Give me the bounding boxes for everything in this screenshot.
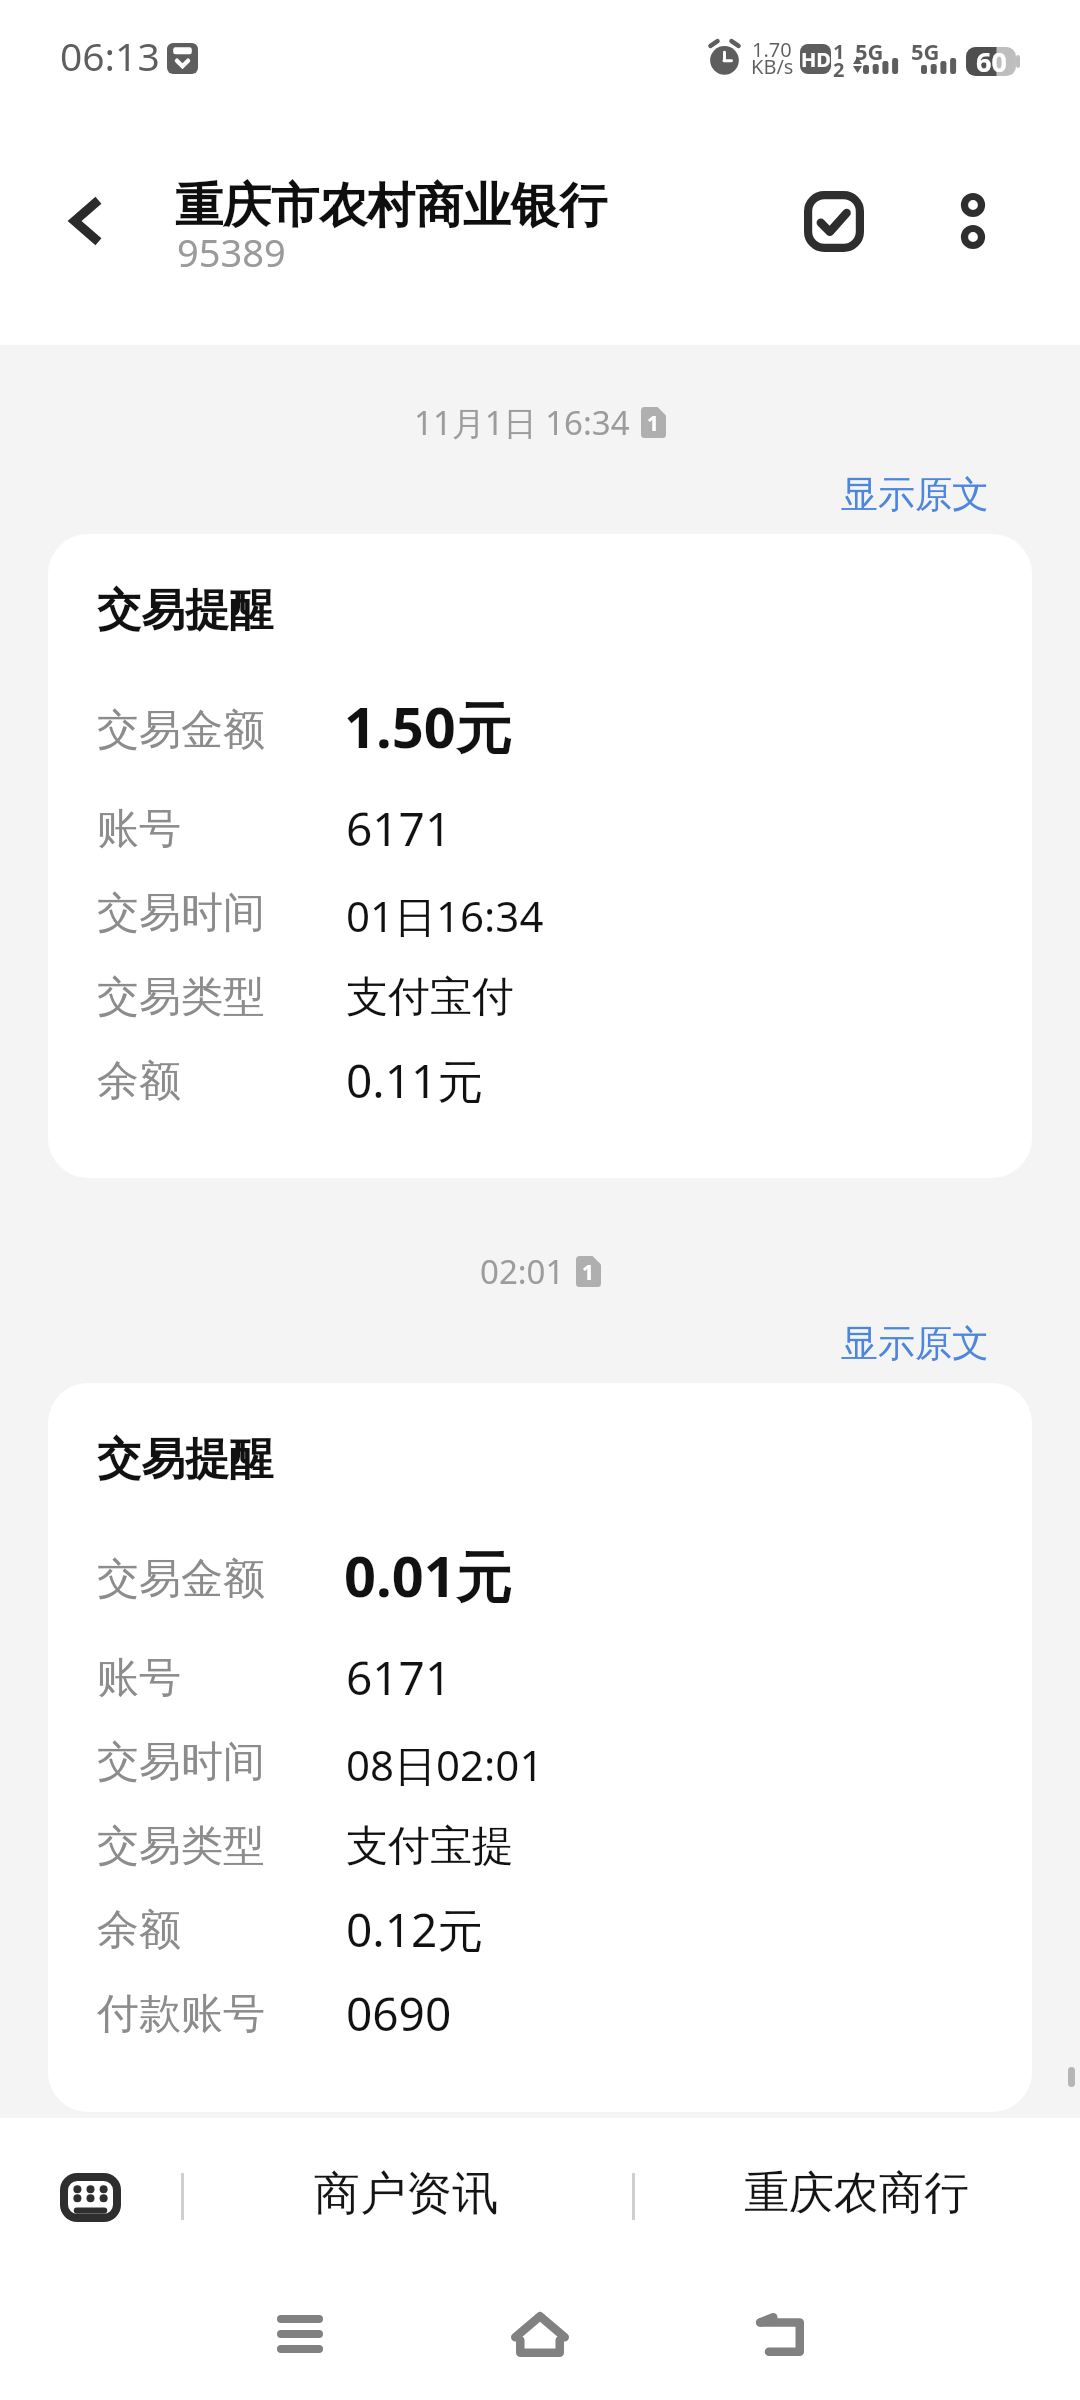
staticText: 交易时间 [97,1736,265,1789]
staticText: 5G [855,36,884,66]
staticText: 交易提醒 [97,1432,273,1487]
staticText: 交易金额 [97,1553,265,1606]
staticText: 重庆农商行 [744,2165,969,2222]
button[interactable]: 显示原文 [827,463,1003,526]
button[interactable]: 重庆农商行 [650,2118,1063,2283]
button[interactable]: 交易提醒 [48,1383,1032,2112]
staticText: 0.11元 [346,1049,484,1112]
staticText: 账号 [97,803,181,856]
staticText: 交易金额 [97,704,265,757]
button[interactable]: More options [929,177,1017,265]
staticText: 交易时间 [97,887,265,940]
staticText: 60 [976,43,1007,80]
staticText: 支付宝付 [346,971,514,1024]
staticText: 6171 [346,1646,452,1709]
staticText: 2 [833,56,845,83]
staticText: 1 [582,1258,595,1287]
staticText: 商户资讯 [314,2165,498,2223]
staticText: 11月1日 16:34 [414,400,630,445]
button[interactable]: Home [472,2284,608,2384]
staticText: 08日02:01 [346,1736,544,1793]
staticText: 余额 [97,1904,181,1957]
staticText: 付款账号 [97,1988,265,2041]
staticText: 显示原文 [841,1320,989,1367]
staticText: 余额 [97,1055,181,1108]
staticText: 支付宝提 [346,1820,514,1873]
staticText: HD [801,46,831,73]
staticText: 02:01 [480,1249,565,1294]
staticText: 交易提醒 [97,583,273,638]
staticText: 1 [647,409,660,438]
staticText: 6171 [346,797,452,860]
button[interactable]: Back [51,185,123,257]
staticText: 重庆市农村商业银行 [175,176,607,236]
button[interactable]: 显示原文 [827,1312,1003,1375]
button[interactable]: 交易提醒 [48,534,1032,1178]
button[interactable]: 商户资讯 [211,2118,601,2283]
staticText: 5G [911,36,940,66]
staticText: 交易类型 [97,1820,265,1873]
staticText: 01日16:34 [346,887,544,944]
staticText: 1.50元 [344,688,512,764]
button[interactable]: Keyboard [30,2147,150,2247]
staticText: 0690 [346,1982,452,2045]
button[interactable]: Back [712,2284,848,2384]
staticText: 显示原文 [841,471,989,518]
button[interactable]: Select messages [790,177,878,265]
staticText: 0.12元 [346,1898,484,1961]
button[interactable]: Recent apps [232,2284,368,2384]
staticText: 账号 [97,1652,181,1705]
staticText: 06:13 [60,29,160,82]
staticText: 1.70 [752,36,792,63]
staticText: 1 [833,38,845,65]
staticText: 0.01元 [344,1537,512,1613]
staticText: 交易类型 [97,971,265,1024]
staticText: 95389 [177,226,286,278]
staticText: KB/s [751,53,794,80]
